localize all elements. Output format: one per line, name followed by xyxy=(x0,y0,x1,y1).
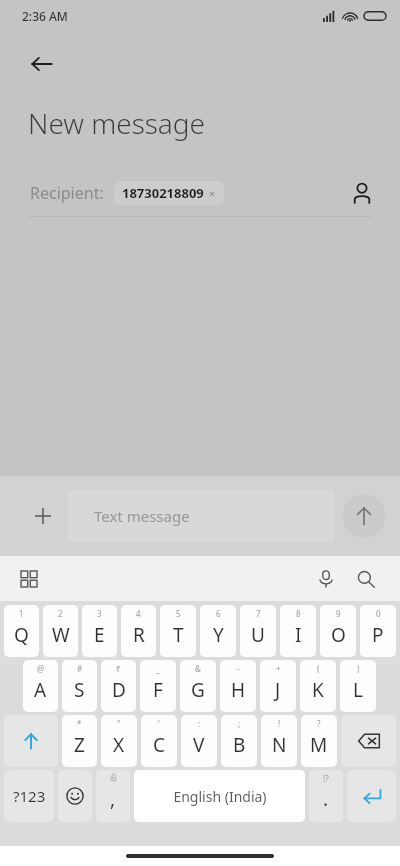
button[interactable]: Enter xyxy=(347,770,396,822)
staticText: ) xyxy=(357,663,360,674)
button[interactable]: " xyxy=(101,715,137,767)
staticText: 4 xyxy=(136,608,141,619)
staticText: 2:36 AM xyxy=(22,8,68,24)
staticText: ( xyxy=(317,663,320,674)
staticText: ?123 xyxy=(13,786,46,806)
staticText: . xyxy=(323,786,329,812)
staticText: # xyxy=(77,663,83,674)
staticText: 9 xyxy=(336,608,341,619)
button[interactable]: Add attachment xyxy=(26,499,60,533)
button[interactable]: 2 xyxy=(43,605,78,657)
staticText: E xyxy=(94,622,105,648)
button[interactable]: 18730218809 xyxy=(122,184,216,202)
button[interactable]: ! xyxy=(261,715,297,767)
staticText: K xyxy=(312,677,324,703)
staticText: English (India) xyxy=(173,787,267,806)
staticText: I xyxy=(295,622,302,648)
button[interactable]: + xyxy=(260,660,296,712)
staticText: S xyxy=(74,677,85,703)
button[interactable]: Contacts xyxy=(344,175,380,211)
staticText: M xyxy=(310,732,328,758)
staticText: Q xyxy=(14,622,29,648)
staticText: @ xyxy=(37,663,45,674)
button[interactable]: * xyxy=(62,715,97,767)
button[interactable]: 5 xyxy=(160,605,196,657)
button[interactable]: 0 xyxy=(360,605,396,657)
staticText: _ xyxy=(156,663,160,674)
button[interactable]: # xyxy=(62,660,97,712)
staticText: " xyxy=(117,718,121,729)
button[interactable]: @ xyxy=(23,660,58,712)
staticText: A xyxy=(34,677,47,703)
staticText: 8 xyxy=(296,608,301,619)
staticText: H xyxy=(231,677,246,703)
button[interactable]: ? xyxy=(301,715,337,767)
button[interactable]: ) xyxy=(340,660,376,712)
button[interactable]: - xyxy=(220,660,256,712)
staticText: 3 xyxy=(97,608,102,619)
button[interactable]: ; xyxy=(221,715,257,767)
button[interactable]: Emoji xyxy=(58,770,92,822)
staticText: P xyxy=(372,622,384,648)
button[interactable]: , xyxy=(96,770,130,822)
staticText: 18730218809 xyxy=(122,184,204,202)
staticText: 0 xyxy=(376,608,381,619)
staticText: T xyxy=(173,622,184,648)
staticText: ! xyxy=(278,718,281,729)
button[interactable]: Shift xyxy=(4,715,58,767)
staticText: V xyxy=(193,732,205,758)
staticText: U xyxy=(251,622,265,648)
staticText: L xyxy=(353,677,363,703)
button[interactable]: Voice input xyxy=(306,559,346,599)
staticText: N xyxy=(272,732,287,758)
button[interactable]: English (India) xyxy=(134,770,305,822)
button[interactable]: 6 xyxy=(200,605,236,657)
staticText: * xyxy=(77,718,82,729)
staticText: - xyxy=(237,663,240,674)
staticText: Y xyxy=(213,622,224,648)
staticText: 2 xyxy=(58,608,63,619)
staticText: × xyxy=(209,186,216,201)
button[interactable]: Keyboard modes xyxy=(12,562,46,596)
staticText: D xyxy=(112,677,126,703)
staticText: & xyxy=(195,663,201,674)
staticText: !? xyxy=(323,773,329,784)
staticText: ' xyxy=(158,718,160,729)
staticText: : xyxy=(198,718,201,729)
staticText: W xyxy=(52,622,70,648)
button[interactable]: ( xyxy=(300,660,336,712)
staticText: Z xyxy=(74,732,85,758)
button[interactable]: ?123 xyxy=(4,770,54,822)
staticText: New message xyxy=(28,104,206,142)
staticText: , xyxy=(110,786,116,812)
button[interactable]: 8 xyxy=(280,605,316,657)
button[interactable]: 9 xyxy=(320,605,356,657)
staticText: + xyxy=(276,663,281,674)
staticText: X xyxy=(113,732,125,758)
staticText: F xyxy=(153,677,163,703)
button[interactable]: Search xyxy=(346,559,386,599)
button[interactable]: !? xyxy=(309,770,343,822)
button[interactable]: ' xyxy=(141,715,177,767)
button[interactable]: 1 xyxy=(4,605,39,657)
button[interactable]: 4 xyxy=(121,605,156,657)
staticText: R xyxy=(133,622,145,648)
button[interactable]: Back xyxy=(22,44,62,84)
staticText: ₹ xyxy=(116,663,121,674)
staticText: C xyxy=(153,732,166,758)
staticText: J xyxy=(275,677,281,703)
staticText: 7 xyxy=(256,608,261,619)
staticText: G xyxy=(191,677,205,703)
button[interactable]: 7 xyxy=(240,605,276,657)
staticText: O xyxy=(331,622,346,648)
staticText: B xyxy=(233,732,246,758)
button[interactable]: ₹ xyxy=(101,660,136,712)
button[interactable]: Backspace xyxy=(341,715,396,767)
button[interactable]: Text message xyxy=(68,490,334,542)
staticText: ? xyxy=(317,718,321,729)
button[interactable]: & xyxy=(180,660,216,712)
button[interactable]: 3 xyxy=(82,605,117,657)
button[interactable]: : xyxy=(181,715,217,767)
button[interactable]: _ xyxy=(140,660,176,712)
button[interactable]: Send xyxy=(342,494,386,538)
